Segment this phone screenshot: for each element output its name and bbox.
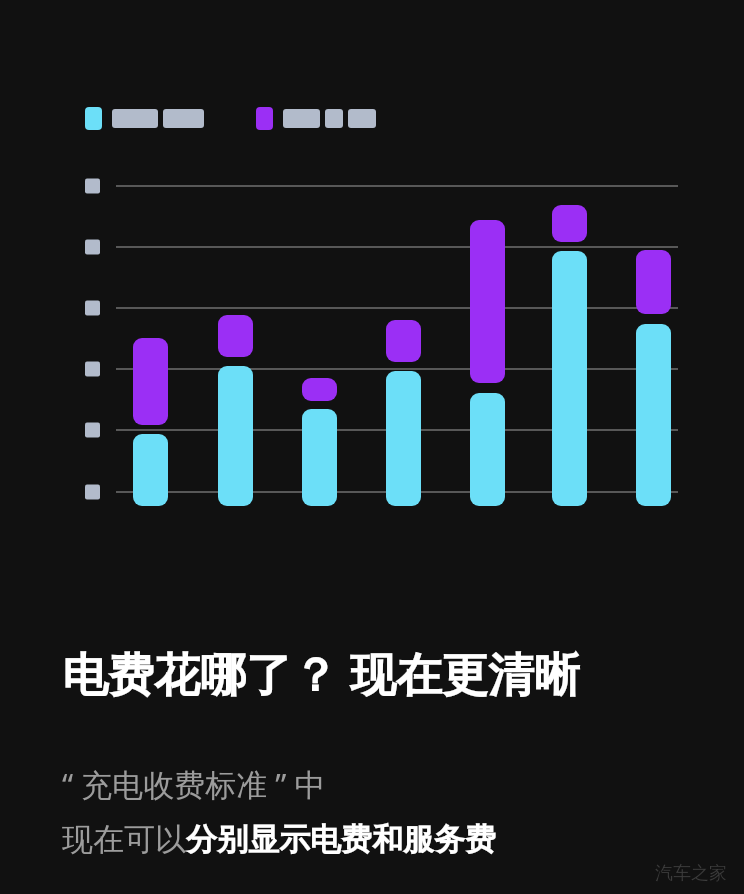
button[interactable]: Electricity cost breakdown chart — [0, 0, 744, 894]
staticText: 电费花哪了？ 现在更清晰 — [62, 642, 580, 705]
staticText: 现在可以分别显示电费和服务费 — [62, 820, 496, 859]
staticText: 汽车之家 — [655, 862, 727, 885]
staticText: “ 充电收费标准 ” 中 — [62, 763, 326, 805]
